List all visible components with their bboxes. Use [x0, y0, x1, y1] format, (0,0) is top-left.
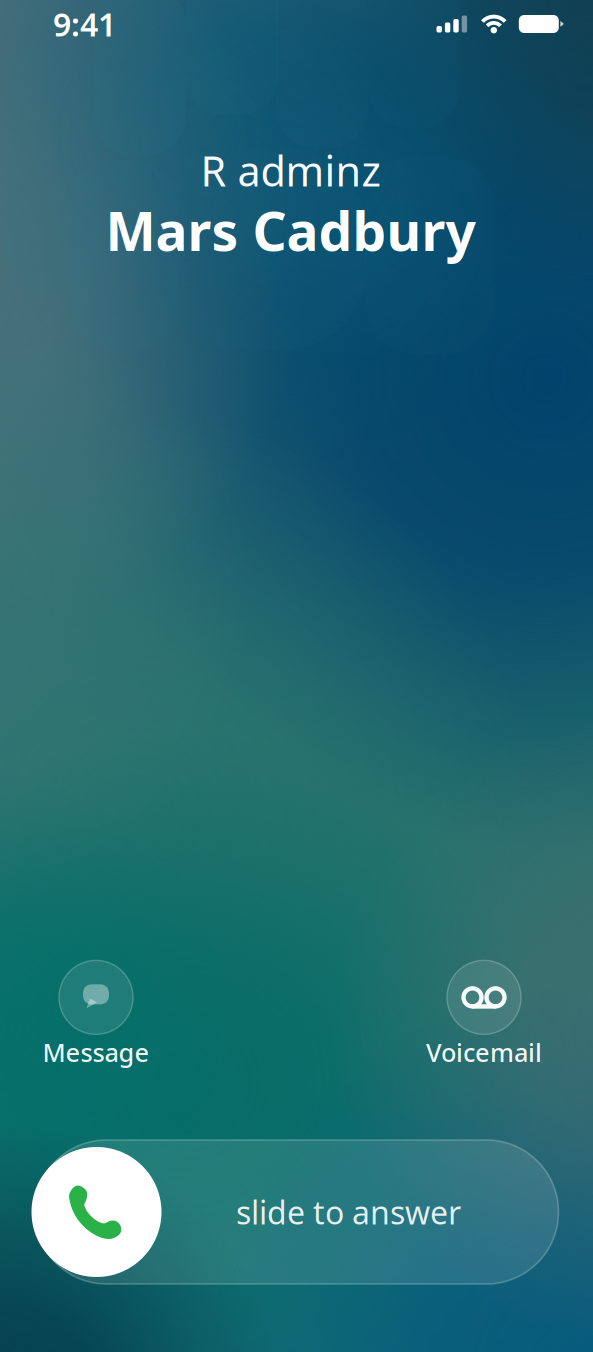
staticText: R adminz — [200, 143, 380, 198]
staticText: Mars Cadbury — [105, 195, 475, 266]
button[interactable]: Voicemail — [409, 960, 559, 1069]
staticText: 9:41 — [53, 3, 116, 45]
staticText: Voicemail — [426, 1035, 542, 1069]
staticText: slide to answer — [236, 1191, 461, 1233]
staticText: Message — [42, 1035, 149, 1069]
button[interactable]: slide to answer — [34, 1140, 558, 1284]
button[interactable]: Message — [21, 960, 171, 1069]
